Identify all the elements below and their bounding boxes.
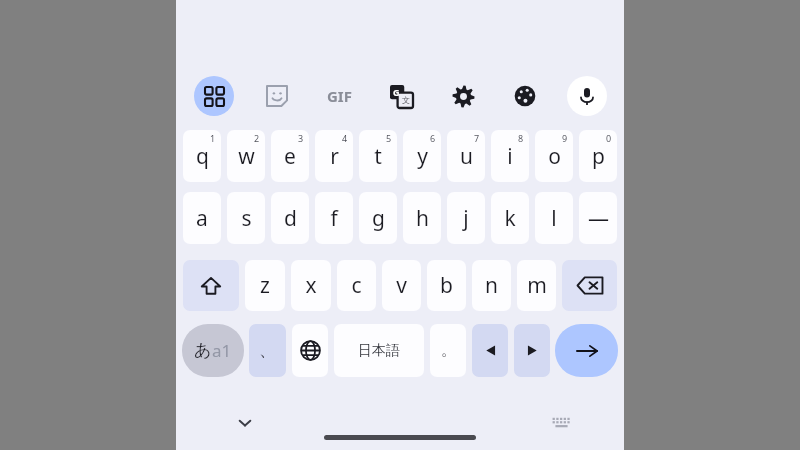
button[interactable]: y [403,130,441,182]
staticText: y [417,142,428,171]
button[interactable]: g [359,192,397,244]
button[interactable]: Switch language [292,324,328,377]
button[interactable]: Switch keyboard [544,406,578,440]
button[interactable]: a [183,192,221,244]
staticText: G [393,86,400,98]
staticText: 。 [441,341,456,360]
staticText: 文 [402,95,410,105]
staticText: 0 [606,132,612,144]
staticText: c [351,271,362,300]
button[interactable]: k [491,192,529,244]
staticText: — [588,204,609,233]
staticText: n [485,271,498,300]
button[interactable]: m [517,260,556,311]
staticText: 3 [298,132,304,144]
staticText: z [260,271,270,300]
staticText: t [374,142,382,171]
staticText: d [284,204,297,233]
button[interactable]: Settings [432,68,494,124]
staticText: w [238,142,255,171]
staticText: p [592,142,605,171]
staticText: a1 [212,339,232,362]
button[interactable]: 日本語 [334,324,424,377]
button[interactable]: Translate [370,68,432,124]
staticText: q [196,142,209,171]
staticText: s [241,204,252,233]
button[interactable]: j [447,192,485,244]
staticText: 7 [474,132,480,144]
button[interactable]: Backspace [562,260,617,311]
button[interactable]: 、 [249,324,286,377]
button[interactable]: p [579,130,617,182]
button[interactable]: Themes [494,68,556,124]
button[interactable]: l [535,192,573,244]
staticText: h [416,204,429,233]
staticText: x [305,271,317,300]
button[interactable]: z [245,260,285,311]
button[interactable]: r [315,130,353,182]
staticText: j [463,204,469,233]
staticText: u [460,142,473,171]
button[interactable]: e [271,130,309,182]
button[interactable]: i [491,130,529,182]
staticText: l [551,204,557,233]
staticText: b [440,271,453,300]
button[interactable]: Keyboard modes [182,68,245,124]
staticText: 6 [430,132,436,144]
button[interactable]: Enter [555,324,618,377]
button[interactable]: Voice input [556,68,618,124]
button[interactable]: f [315,192,353,244]
staticText: m [527,271,547,300]
staticText: 1 [210,132,216,144]
staticText: v [396,271,407,300]
button[interactable]: 。 [430,324,466,377]
button[interactable]: u [447,130,485,182]
staticText: 2 [254,132,260,144]
button[interactable]: s [227,192,265,244]
button[interactable]: x [291,260,331,311]
button[interactable]: あ [182,324,244,377]
staticText: i [507,142,513,171]
staticText: GIF [327,86,352,106]
button[interactable]: v [382,260,421,311]
button[interactable]: t [359,130,397,182]
staticText: g [372,204,385,233]
button[interactable]: q [183,130,221,182]
button[interactable]: w [227,130,265,182]
staticText: a [196,204,208,233]
button[interactable]: b [427,260,466,311]
staticText: k [504,204,516,233]
button[interactable]: d [271,192,309,244]
staticText: 4 [342,132,348,144]
button[interactable]: n [472,260,511,311]
button[interactable]: Shift [183,260,239,311]
staticText: f [330,204,338,233]
staticText: 5 [386,132,392,144]
staticText: o [548,142,561,171]
button[interactable]: Stickers [245,68,308,124]
button[interactable]: c [337,260,376,311]
button[interactable]: o [535,130,573,182]
staticText: 、 [259,340,276,361]
staticText: 日本語 [358,342,400,360]
button[interactable]: Move cursor right [514,324,550,377]
button[interactable]: Hide keyboard [228,406,262,440]
staticText: 9 [562,132,568,144]
staticText: e [284,142,296,171]
staticText: r [330,142,339,171]
staticText: あ [194,340,212,361]
button[interactable]: — [579,192,617,244]
button[interactable]: h [403,192,441,244]
button[interactable]: Move cursor left [472,324,508,377]
button[interactable]: GIF [308,68,370,124]
staticText: 8 [518,132,524,144]
